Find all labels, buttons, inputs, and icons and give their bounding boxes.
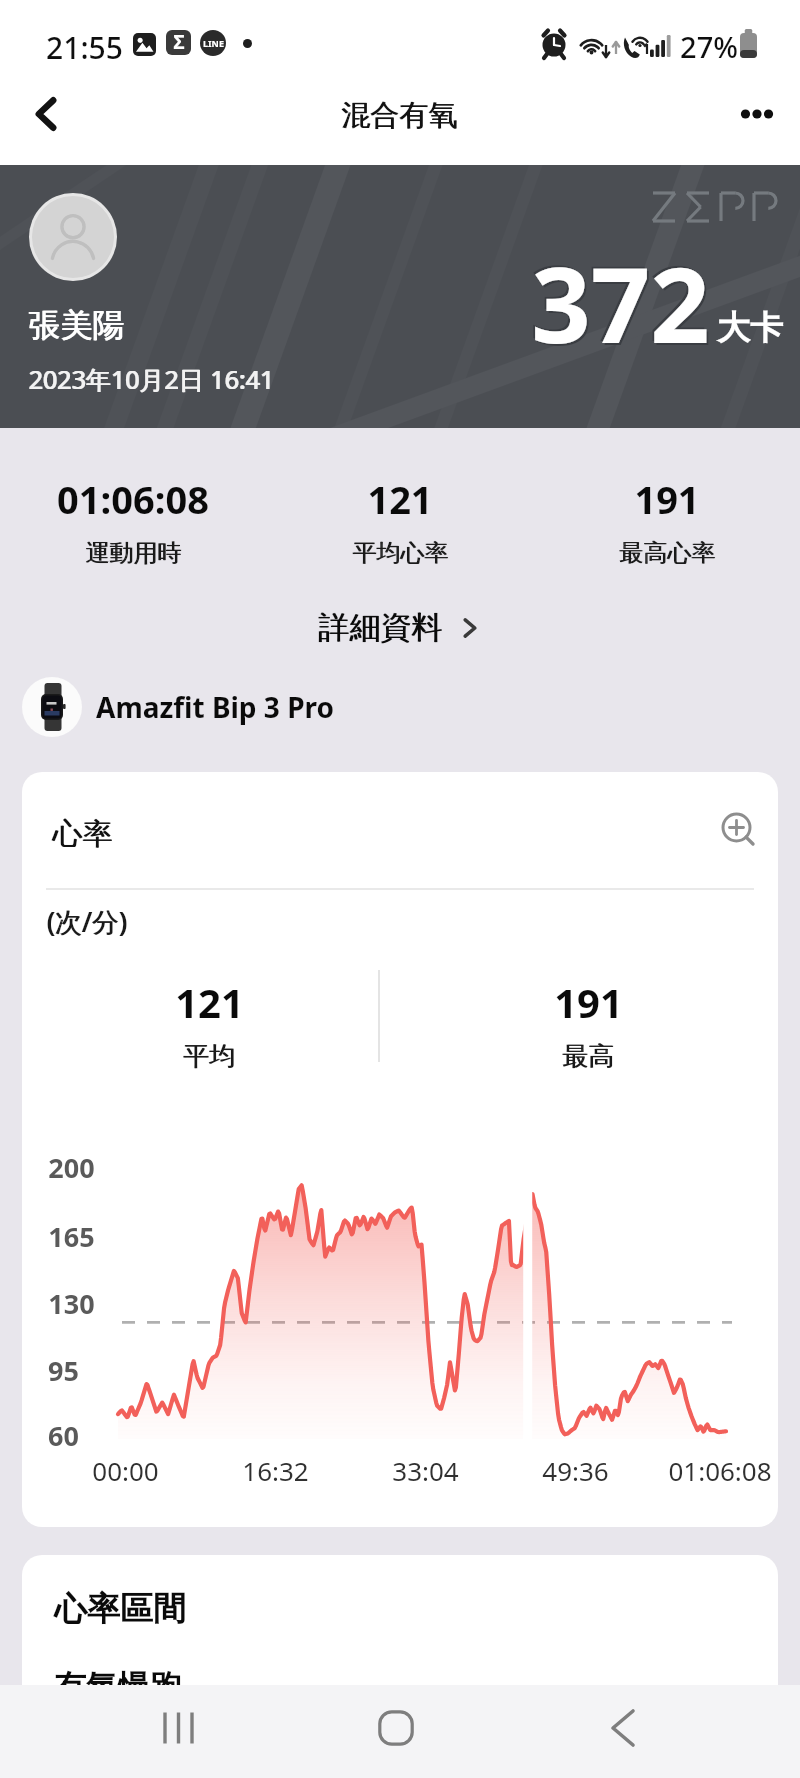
staticText: 33:04 [392,1453,459,1488]
staticText: 200 [48,1149,95,1186]
button[interactable]: Profile photo [29,193,117,281]
staticText: 詳細資料 [318,608,442,647]
staticText: 混合有氧 [342,97,458,134]
staticText: 心率區間 [54,1588,186,1630]
staticText: 01:06:08 [668,1453,772,1488]
staticText: LINE [203,37,224,49]
staticText: 運動用時 [86,538,182,568]
staticText: 運動用時 [85,538,181,568]
staticText: (次/分) [46,903,127,940]
staticText: 121 [175,975,244,1029]
staticText: 2023年10月2日 16:41 [29,362,275,396]
staticText: 16:32 [242,1453,309,1488]
staticText: 張美陽 [28,305,124,345]
staticText: (次/分) [47,903,128,940]
staticText: 165 [48,1218,95,1255]
staticText: 60 [48,1417,79,1454]
button[interactable]: Recent apps [139,1688,219,1768]
staticText: 最高心率 [620,538,716,568]
staticText: 01:06:08 [57,473,209,525]
button[interactable]: Home [356,1688,436,1768]
staticText: 平均 [183,1040,235,1073]
staticText: 平均 [184,1040,236,1073]
staticText: 最高 [562,1040,614,1073]
staticText: 最高 [563,1040,615,1073]
staticText: 平均心率 [353,538,449,568]
staticText: 372 [529,230,708,372]
staticText: 372 [533,234,712,376]
staticText: 00:00 [92,1453,159,1488]
staticText: 372 [531,232,710,374]
button[interactable]: Amazfit Bip 3 Pro [22,677,800,737]
staticText: 詳細資料 [319,608,443,647]
staticText: 心率 [52,815,112,853]
staticText: 27% [680,27,738,66]
staticText: 130 [48,1285,95,1322]
button[interactable]: Back [583,1688,663,1768]
staticText: Σ [173,30,185,54]
staticText: 95 [48,1352,79,1389]
staticText: 心率 [53,815,113,853]
staticText: 191 [634,473,700,525]
button[interactable]: More options [728,85,786,143]
staticText: 混合有氧 [341,97,457,134]
staticText: 21:55 [46,27,123,68]
button[interactable]: Enlarge chart [714,806,766,858]
staticText: 有氧慢跑 [54,1667,182,1707]
staticText: 平均心率 [352,538,448,568]
staticText: 191 [554,975,623,1029]
button[interactable]: 詳細資料 [306,600,494,655]
staticText: Amazfit Bip 3 Pro [96,688,334,726]
staticText: 大卡 [717,307,783,349]
staticText: 121 [367,473,433,525]
button[interactable]: Back [17,85,75,143]
staticText: 49:36 [542,1453,609,1488]
staticText: 最高心率 [619,538,715,568]
staticText: 2023年10月2日 16:41 [28,362,274,396]
staticText: 張美陽 [29,305,125,345]
